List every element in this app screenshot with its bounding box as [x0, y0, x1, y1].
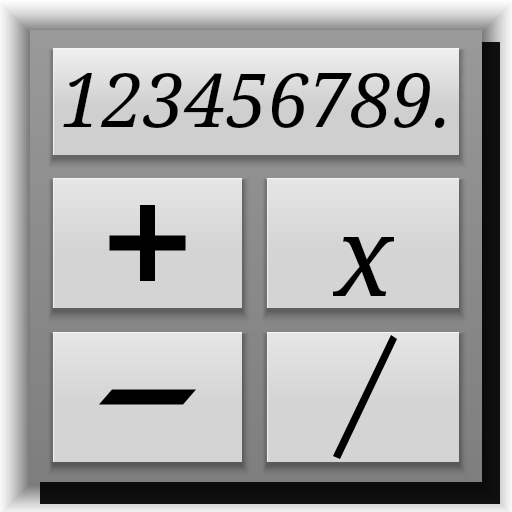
button[interactable]: Divide [267, 332, 459, 462]
staticText: 123456789.10 [53, 48, 459, 155]
button[interactable]: Display 123456789.10 [53, 48, 459, 155]
staticText: x [333, 178, 394, 308]
button[interactable]: Plus [53, 178, 242, 308]
button[interactable]: Multiply [267, 178, 459, 308]
button[interactable]: Minus [53, 332, 242, 462]
